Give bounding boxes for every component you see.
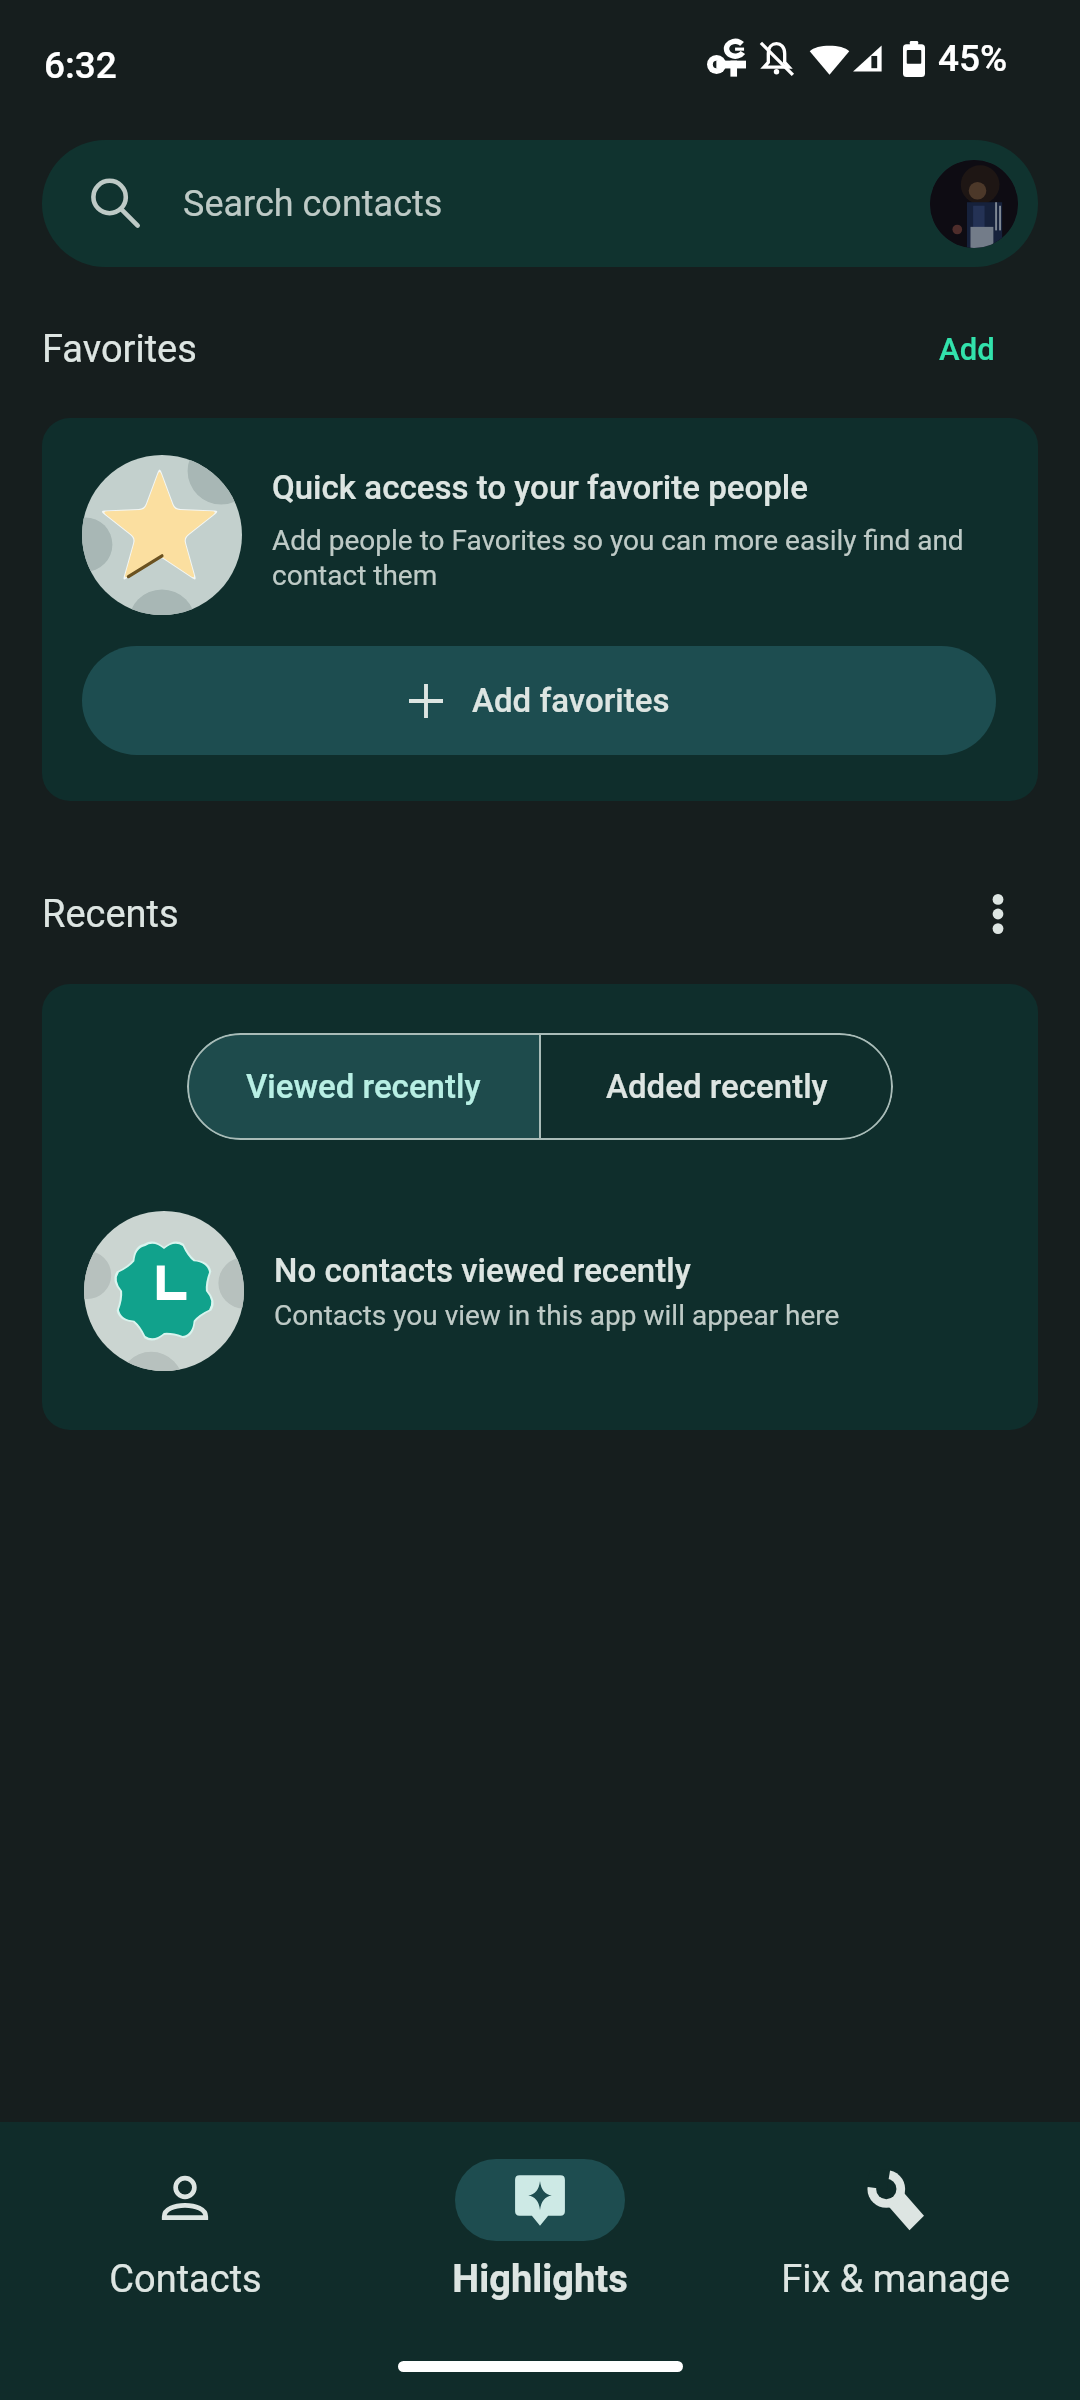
- staticText: Add: [939, 331, 995, 367]
- staticText: Add people to Favorites so you can more …: [272, 524, 996, 592]
- button[interactable]: Contacts: [15, 2159, 355, 2302]
- button[interactable]: Added recently: [541, 1033, 893, 1140]
- staticText: Quick access to your favorite people: [272, 468, 809, 507]
- staticText: Add favorites: [472, 681, 670, 720]
- staticText: Contacts: [109, 2257, 262, 2302]
- button[interactable]: Highlights: [370, 2159, 710, 2302]
- staticText: 6:32: [44, 44, 117, 87]
- button[interactable]: More options: [956, 882, 1040, 946]
- staticText: Added recently: [606, 1067, 828, 1106]
- button[interactable]: Account: [930, 160, 1018, 248]
- button[interactable]: Search contacts: [42, 140, 1038, 267]
- staticText: 45%: [938, 37, 1008, 80]
- staticText: Contacts you view in this app will appea…: [274, 1299, 840, 1332]
- staticText: Viewed recently: [246, 1067, 481, 1106]
- staticText: Highlights: [452, 2257, 628, 2302]
- button[interactable]: Add: [898, 321, 1036, 377]
- staticText: No contacts viewed recently: [274, 1251, 691, 1290]
- staticText: Recents: [42, 892, 179, 937]
- button[interactable]: Add favorites: [82, 646, 996, 755]
- staticText: Favorites: [42, 327, 197, 372]
- button[interactable]: Viewed recently: [187, 1033, 539, 1140]
- staticText: Search contacts: [183, 183, 443, 225]
- staticText: Fix & manage: [781, 2257, 1010, 2302]
- button[interactable]: Fix & manage: [725, 2159, 1065, 2302]
